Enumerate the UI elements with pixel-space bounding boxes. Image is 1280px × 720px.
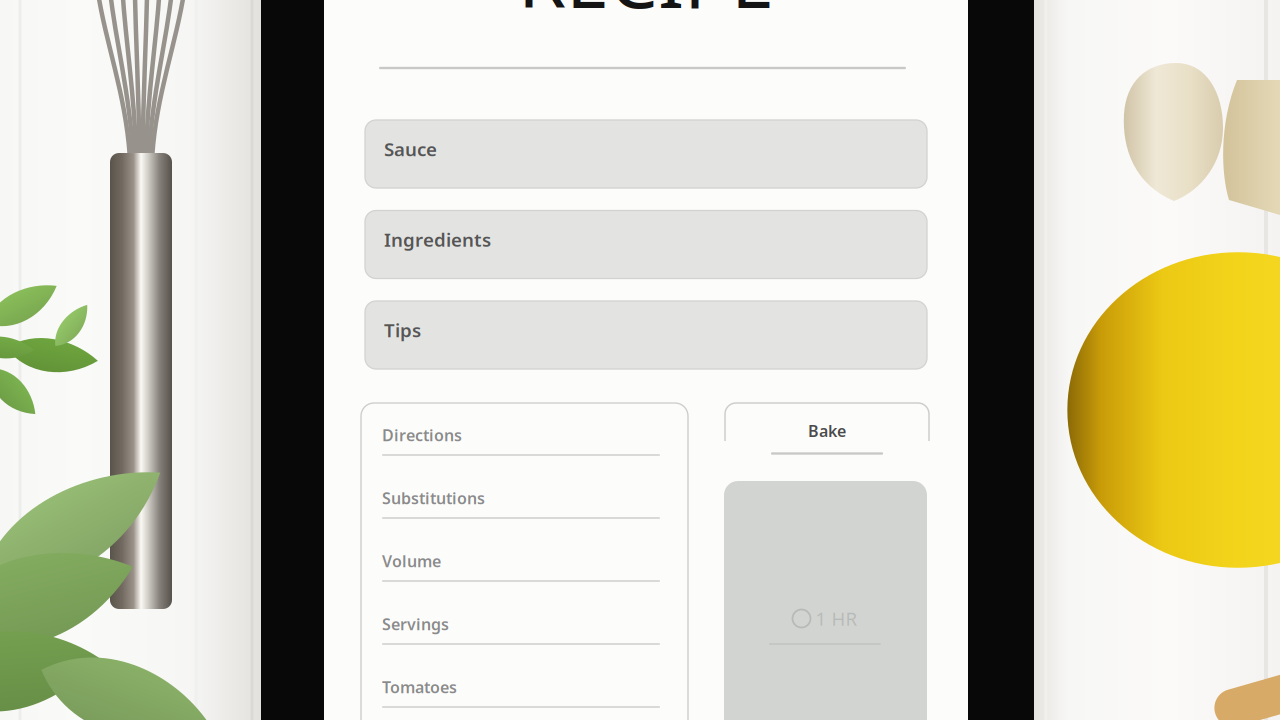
staticText: Directions (382, 424, 462, 446)
button[interactable]: Volume (361, 529, 688, 592)
staticText: Bake (808, 420, 846, 441)
button[interactable]: Ingredients (365, 210, 927, 278)
button[interactable]: Sauce (365, 120, 927, 188)
staticText: Sauce (384, 137, 437, 161)
staticText: Tips (384, 318, 421, 342)
staticText: Ingredients (384, 227, 491, 252)
button[interactable]: Bake (723, 403, 933, 461)
button[interactable]: Servings (361, 592, 688, 655)
staticText: RECIPE (518, 0, 774, 29)
button[interactable]: Substitutions (361, 466, 688, 529)
staticText: Volume (382, 550, 441, 572)
button[interactable]: Tips (365, 301, 927, 369)
staticText: Substitutions (382, 487, 485, 509)
staticText: Servings (382, 613, 449, 635)
staticText: 1 HR (815, 606, 857, 631)
button[interactable]: Directions (361, 403, 688, 466)
staticText: Tomatoes (382, 676, 457, 698)
button[interactable]: Tomatoes (361, 655, 688, 718)
